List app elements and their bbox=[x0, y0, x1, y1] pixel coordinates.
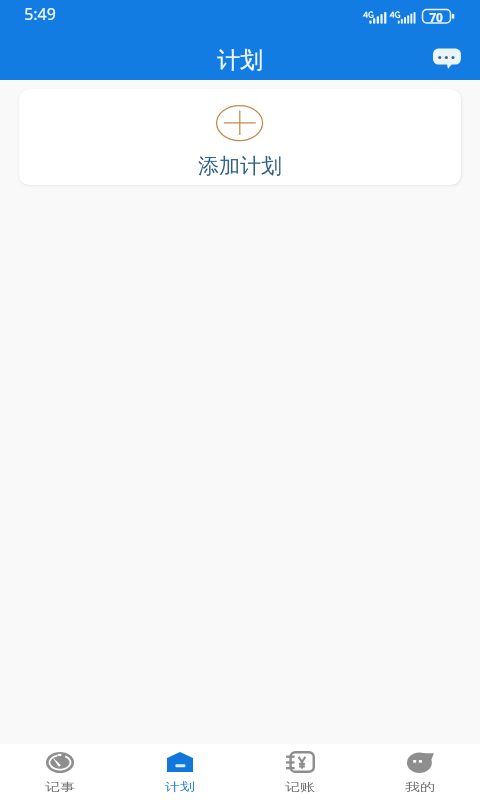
button[interactable]: More options bbox=[428, 44, 466, 76]
button[interactable]: 添加计划 bbox=[19, 89, 461, 185]
button[interactable]: 我的 bbox=[360, 744, 480, 800]
button[interactable]: 记事 bbox=[0, 744, 120, 800]
staticText: 计划 bbox=[217, 46, 263, 75]
staticText: 记账 bbox=[285, 780, 315, 793]
staticText: 我的 bbox=[405, 780, 435, 793]
button[interactable]: 记账 bbox=[240, 744, 360, 800]
button[interactable]: 计划 bbox=[120, 744, 240, 800]
staticText: 计划 bbox=[165, 780, 195, 793]
staticText: 5:49 bbox=[24, 3, 56, 25]
staticText: 70 bbox=[423, 9, 449, 25]
staticText: 添加计划 bbox=[19, 153, 461, 179]
staticText: 记事 bbox=[45, 780, 75, 793]
